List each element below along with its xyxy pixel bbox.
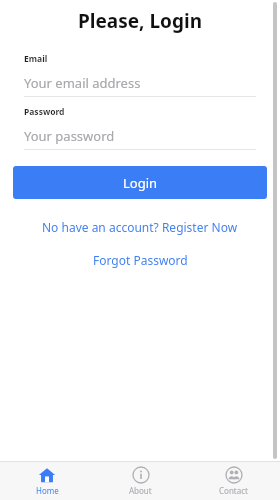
staticText: Your password <box>24 127 115 145</box>
staticText: Email <box>24 53 48 65</box>
button[interactable]: Login <box>13 166 267 199</box>
staticText: Login <box>123 174 158 192</box>
staticText: Please, Login <box>0 8 280 34</box>
staticText: Home <box>36 485 59 496</box>
staticText: Your email address <box>24 74 141 92</box>
button[interactable]: About <box>94 466 187 496</box>
button[interactable]: Home <box>0 466 94 496</box>
staticText: No have an account? Register Now <box>42 219 238 235</box>
button[interactable]: Your password <box>24 127 256 150</box>
button[interactable]: Your email address <box>24 74 256 97</box>
button[interactable]: Contact <box>187 466 280 496</box>
button[interactable]: No have an account? Register Now <box>0 219 280 235</box>
staticText: About <box>129 485 152 496</box>
staticText: Contact <box>219 485 248 496</box>
staticText: Password <box>24 106 65 118</box>
button[interactable]: Forgot Password <box>0 252 280 268</box>
staticText: Forgot Password <box>93 252 188 268</box>
